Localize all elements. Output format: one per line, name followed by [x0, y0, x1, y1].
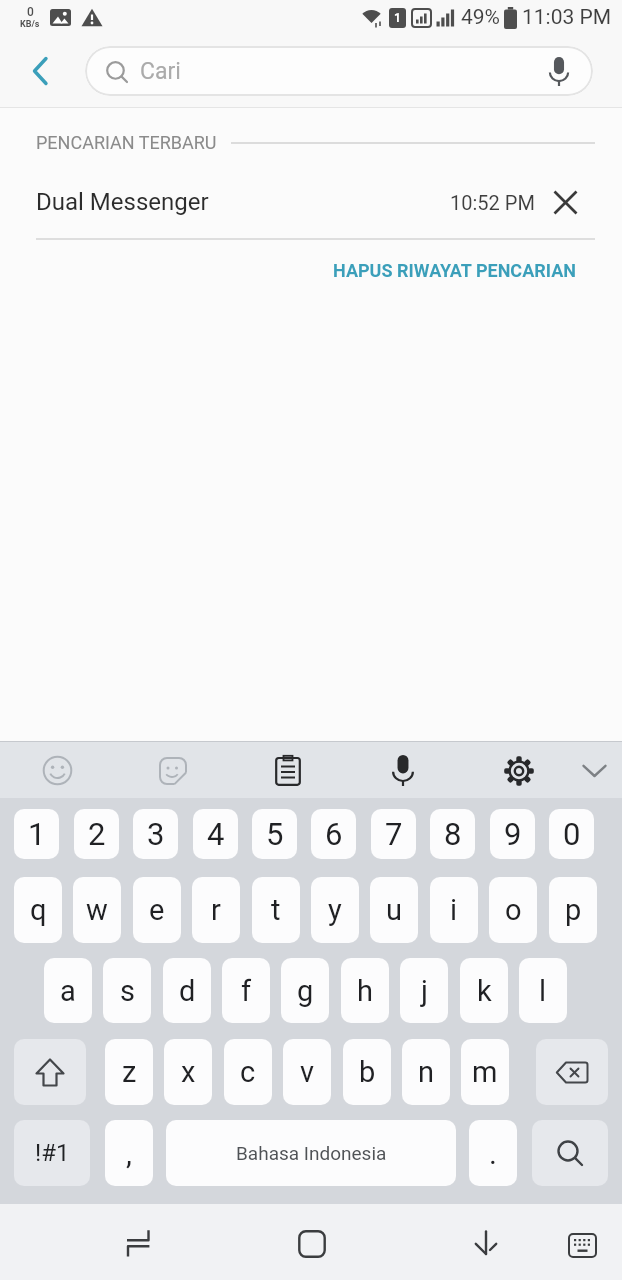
button[interactable]: b: [343, 1039, 391, 1105]
staticText: z: [122, 1055, 137, 1089]
staticText: a: [60, 974, 76, 1008]
button[interactable]: t: [252, 877, 300, 943]
button[interactable]: 4: [193, 809, 238, 859]
button[interactable]: [582, 758, 607, 783]
button[interactable]: [553, 190, 578, 215]
button[interactable]: 6: [311, 809, 356, 859]
staticText: x: [181, 1055, 196, 1089]
button[interactable]: 7: [371, 809, 416, 859]
staticText: w: [86, 893, 108, 927]
button[interactable]: [386, 754, 419, 787]
staticText: n: [418, 1055, 435, 1089]
staticText: 0: [27, 5, 34, 19]
button[interactable]: m: [461, 1039, 509, 1105]
staticText: !#1: [35, 1139, 70, 1167]
staticText: 4: [207, 816, 225, 852]
staticText: p: [565, 893, 582, 927]
button[interactable]: a: [44, 958, 92, 1023]
staticText: e: [149, 893, 165, 927]
button[interactable]: 9: [490, 809, 535, 859]
button[interactable]: z: [105, 1039, 153, 1105]
button[interactable]: 8: [430, 809, 475, 859]
button[interactable]: [547, 56, 571, 87]
staticText: 49%: [461, 5, 500, 30]
button[interactable]: [124, 1229, 152, 1257]
staticText: b: [359, 1055, 376, 1089]
button[interactable]: [157, 755, 188, 786]
button[interactable]: r: [192, 877, 240, 943]
button[interactable]: s: [103, 958, 151, 1023]
button[interactable]: n: [402, 1039, 450, 1105]
staticText: 0: [563, 816, 581, 852]
button[interactable]: e: [133, 877, 181, 943]
staticText: d: [179, 974, 196, 1008]
staticText: 7: [385, 816, 403, 852]
staticText: HAPUS RIWAYAT PENCARIAN: [333, 260, 577, 281]
button[interactable]: j: [400, 958, 448, 1023]
staticText: v: [300, 1055, 315, 1089]
button[interactable]: [30, 56, 50, 86]
button[interactable]: [473, 1230, 499, 1256]
button[interactable]: v: [283, 1039, 331, 1105]
button[interactable]: [568, 1231, 597, 1260]
button[interactable]: 2: [74, 809, 119, 859]
staticText: 1: [28, 816, 46, 852]
button[interactable]: x: [164, 1039, 212, 1105]
button[interactable]: Bahasa Indonesia: [166, 1120, 456, 1186]
staticText: j: [421, 974, 428, 1008]
staticText: c: [240, 1055, 256, 1089]
button[interactable]: c: [224, 1039, 272, 1105]
staticText: .: [489, 1136, 497, 1171]
staticText: 10:52 PM: [450, 191, 535, 214]
button[interactable]: o: [489, 877, 537, 943]
staticText: 5: [266, 816, 284, 852]
staticText: Bahasa Indonesia: [236, 1142, 387, 1164]
staticText: s: [120, 974, 135, 1008]
staticText: 3: [147, 816, 165, 852]
button[interactable]: k: [460, 958, 508, 1023]
staticText: 2: [88, 816, 106, 852]
staticText: 6: [325, 816, 343, 852]
staticText: 1: [394, 11, 401, 25]
button[interactable]: !#1: [14, 1120, 90, 1186]
button[interactable]: Cari: [85, 46, 593, 96]
button[interactable]: [532, 1120, 608, 1186]
staticText: Dual Messenger: [36, 188, 209, 216]
button[interactable]: 1: [14, 809, 59, 859]
staticText: ,: [126, 1136, 132, 1171]
button[interactable]: y: [311, 877, 359, 943]
staticText: y: [328, 893, 342, 927]
staticText: KB/s: [20, 19, 40, 30]
staticText: m: [472, 1055, 498, 1089]
button[interactable]: [42, 755, 73, 786]
button[interactable]: [502, 754, 535, 787]
button[interactable]: f: [222, 958, 270, 1023]
button[interactable]: q: [14, 877, 62, 943]
button[interactable]: w: [73, 877, 121, 943]
button[interactable]: ,: [105, 1120, 153, 1186]
staticText: 8: [444, 816, 462, 852]
staticText: o: [505, 893, 522, 927]
button[interactable]: .: [469, 1120, 517, 1186]
button[interactable]: g: [281, 958, 329, 1023]
button[interactable]: l: [519, 958, 567, 1023]
button[interactable]: i: [430, 877, 478, 943]
staticText: r: [211, 893, 221, 927]
button[interactable]: u: [370, 877, 418, 943]
button[interactable]: h: [341, 958, 389, 1023]
staticText: u: [386, 893, 402, 927]
staticText: Cari: [140, 58, 181, 85]
button[interactable]: [536, 1039, 608, 1105]
button[interactable]: Dual Messenger: [0, 166, 622, 238]
button[interactable]: 5: [252, 809, 297, 859]
staticText: l: [539, 974, 547, 1008]
button[interactable]: [272, 755, 303, 786]
staticText: g: [297, 974, 314, 1008]
button[interactable]: p: [549, 877, 597, 943]
button[interactable]: HAPUS RIWAYAT PENCARIAN: [333, 260, 622, 281]
button[interactable]: [14, 1039, 86, 1105]
button[interactable]: d: [163, 958, 211, 1023]
button[interactable]: [298, 1230, 325, 1257]
button[interactable]: 3: [133, 809, 178, 859]
button[interactable]: 0: [549, 809, 594, 859]
